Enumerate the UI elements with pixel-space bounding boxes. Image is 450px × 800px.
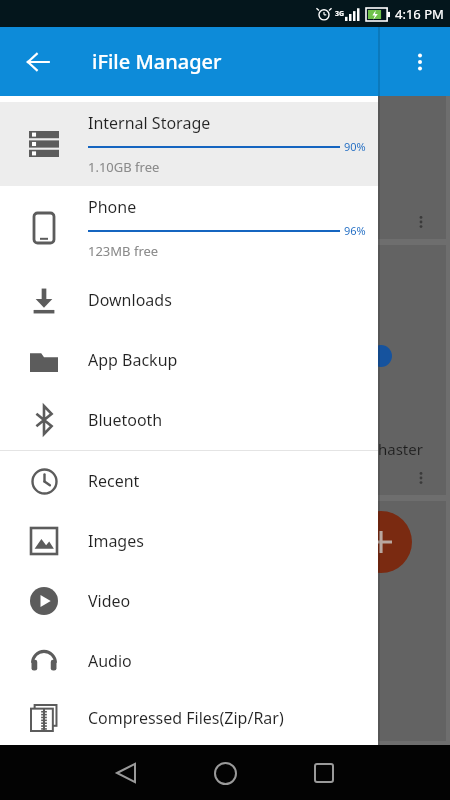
button[interactable]: Home [199, 747, 251, 799]
button[interactable]: Images [0, 511, 378, 571]
button[interactable]: Video [0, 571, 378, 631]
staticText: Phone [88, 196, 137, 218]
staticText: Bluetooth [88, 409, 163, 431]
staticText: 1.10GB free [88, 158, 160, 176]
staticText: 4:16 PM [395, 5, 444, 23]
staticText: haster [378, 439, 446, 459]
staticText: Recent [88, 470, 140, 492]
button[interactable]: Add [350, 511, 412, 573]
staticText: Images [88, 530, 144, 552]
button[interactable]: Recent [0, 451, 378, 511]
button[interactable]: Recent apps [298, 747, 350, 799]
staticText: 3G [335, 9, 345, 19]
staticText: Internal Storage [88, 112, 211, 134]
button[interactable]: Downloads [0, 270, 378, 330]
staticText: Compressed Files(Zip/Rar) [88, 707, 284, 729]
button[interactable]: Compressed Files(Zip/Rar) [0, 691, 378, 745]
button[interactable]: More options [396, 38, 444, 86]
button[interactable]: Back [14, 38, 62, 86]
button[interactable]: Audio [0, 631, 378, 691]
staticText: App Backup [88, 349, 178, 371]
staticText: Audio [88, 650, 132, 672]
button[interactable]: Internal Storage [0, 102, 378, 186]
staticText: Downloads [88, 289, 172, 311]
staticText: 96% [344, 223, 366, 238]
button[interactable]: Phone [0, 186, 378, 270]
staticText: 123MB free [88, 242, 159, 260]
staticText: 90% [344, 139, 366, 154]
staticText: iFile Manager [92, 48, 222, 75]
button[interactable]: App Backup [0, 330, 378, 390]
button[interactable]: Bluetooth [0, 390, 378, 450]
staticText: Video [88, 590, 131, 612]
button[interactable]: Back [100, 747, 152, 799]
